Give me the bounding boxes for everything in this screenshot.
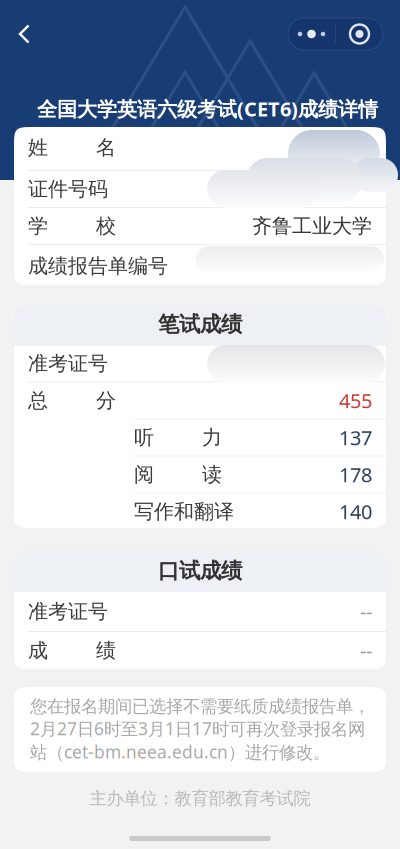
staticText: 笔试成绩	[158, 311, 242, 338]
staticText: --	[360, 598, 372, 625]
staticText: 成 绩	[28, 638, 116, 663]
button[interactable]: More	[288, 18, 335, 50]
staticText: 178	[339, 461, 372, 488]
staticText: 455	[339, 387, 372, 414]
staticText: 学 校	[28, 214, 116, 238]
staticText: 证件号码	[28, 177, 108, 201]
staticText: 姓 名	[28, 135, 116, 160]
staticText: 写作和翻译	[134, 499, 234, 524]
staticText: 听 力	[134, 425, 222, 450]
button[interactable]: Close	[336, 18, 383, 50]
staticText: 全国大学英语六级考试(CET6)成绩详情	[37, 95, 378, 122]
button[interactable]: Back	[0, 18, 51, 50]
staticText: 口试成绩	[158, 558, 242, 584]
staticText: 137	[339, 424, 372, 451]
staticText: 准考证号	[28, 599, 108, 624]
staticText: 140	[339, 498, 372, 525]
staticText: 主办单位：教育部教育考试院	[89, 788, 310, 809]
staticText: 总 分	[28, 388, 116, 413]
staticText: 阅 读	[134, 462, 222, 487]
staticText: 齐鲁工业大学	[252, 214, 372, 238]
staticText: 您在报名期间已选择不需要纸质成绩报告单，2月27日6时至3月1日17时可再次登录…	[30, 696, 370, 763]
staticText: 成绩报告单编号	[28, 254, 168, 278]
staticText: 准考证号	[28, 351, 108, 376]
staticText: --	[360, 637, 372, 664]
